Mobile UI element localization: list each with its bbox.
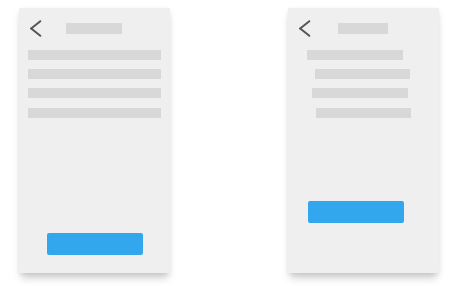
button[interactable]: Back: [294, 18, 316, 40]
button[interactable]: Primary action: [308, 201, 404, 223]
button[interactable]: Primary action: [47, 233, 143, 255]
button[interactable]: Back: [25, 18, 47, 40]
